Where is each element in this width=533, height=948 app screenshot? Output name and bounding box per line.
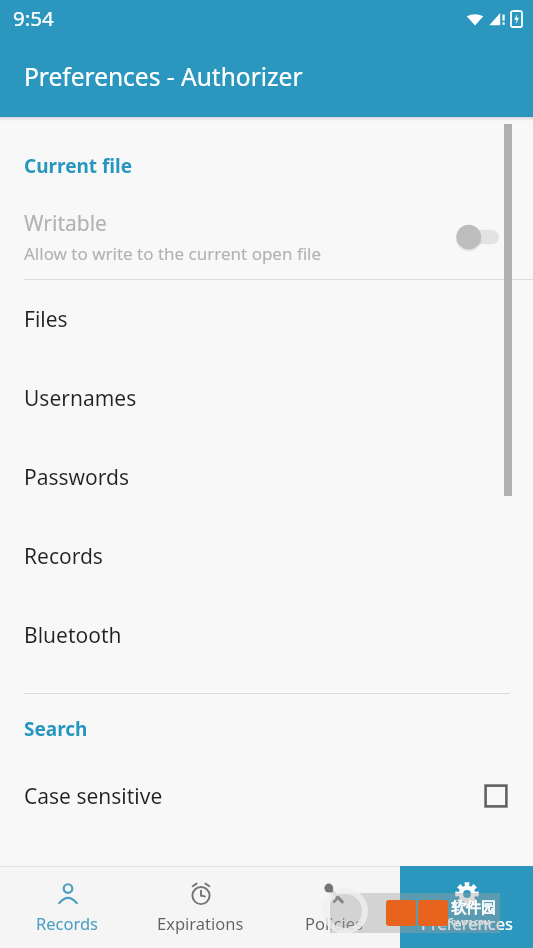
- staticText: Files: [24, 305, 68, 334]
- button[interactable]: Bluetooth: [0, 596, 533, 675]
- staticText: Preferences - Authorizer: [24, 60, 303, 93]
- staticText: Search: [24, 716, 88, 742]
- other: Preferences: [454, 881, 480, 907]
- button[interactable]: Writable: [0, 201, 533, 273]
- button[interactable]: Passwords: [0, 438, 533, 517]
- staticText: Writable: [24, 209, 107, 238]
- button[interactable]: Case sensitive: [0, 768, 533, 824]
- staticText: Usernames: [24, 384, 137, 413]
- staticText: Preferences: [421, 912, 513, 934]
- staticText: Current file: [24, 153, 133, 179]
- staticText: CA173.COM: [451, 918, 491, 928]
- staticText: Case sensitive: [24, 782, 483, 811]
- button[interactable]: Usernames: [0, 359, 533, 438]
- button[interactable]: Policies: [267, 866, 400, 948]
- staticText: Passwords: [24, 463, 130, 492]
- button[interactable]: Preferences: [400, 866, 533, 948]
- button[interactable]: Records: [0, 517, 533, 596]
- staticText: Policies: [305, 912, 363, 934]
- staticText: Records: [24, 542, 103, 571]
- button[interactable]: Expirations: [134, 866, 267, 948]
- button[interactable]: Records: [0, 866, 134, 948]
- staticText: 9:54: [13, 4, 54, 32]
- staticText: Allow to write to the current open file: [24, 242, 322, 265]
- button[interactable]: Files: [0, 280, 533, 359]
- staticText: Records: [36, 912, 99, 934]
- staticText: Bluetooth: [24, 621, 122, 650]
- staticText: 软件园: [451, 899, 496, 918]
- staticText: Expirations: [157, 912, 244, 934]
